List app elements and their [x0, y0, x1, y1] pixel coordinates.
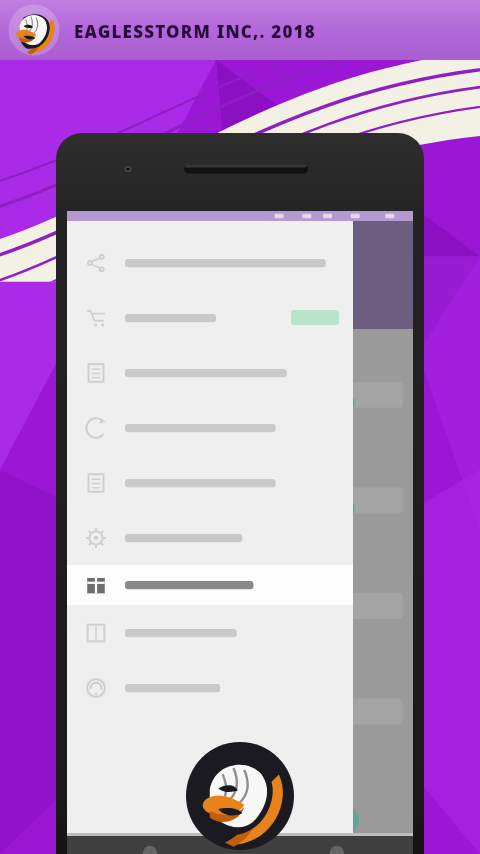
button[interactable]: EagleStorm logo [0, 0, 480, 60]
button[interactable] [67, 605, 353, 660]
button[interactable] [67, 565, 353, 605]
staticText: EAGLESSTORM INC,. 2018 [74, 20, 316, 43]
button[interactable] [67, 235, 353, 290]
button[interactable] [67, 510, 353, 565]
button[interactable] [67, 290, 353, 345]
button[interactable] [67, 660, 353, 715]
button[interactable] [67, 455, 353, 510]
button[interactable] [67, 345, 353, 400]
button[interactable] [67, 400, 353, 455]
other: EagleStorm logo [8, 4, 60, 56]
button[interactable]: EagleStorm badge [186, 742, 294, 850]
